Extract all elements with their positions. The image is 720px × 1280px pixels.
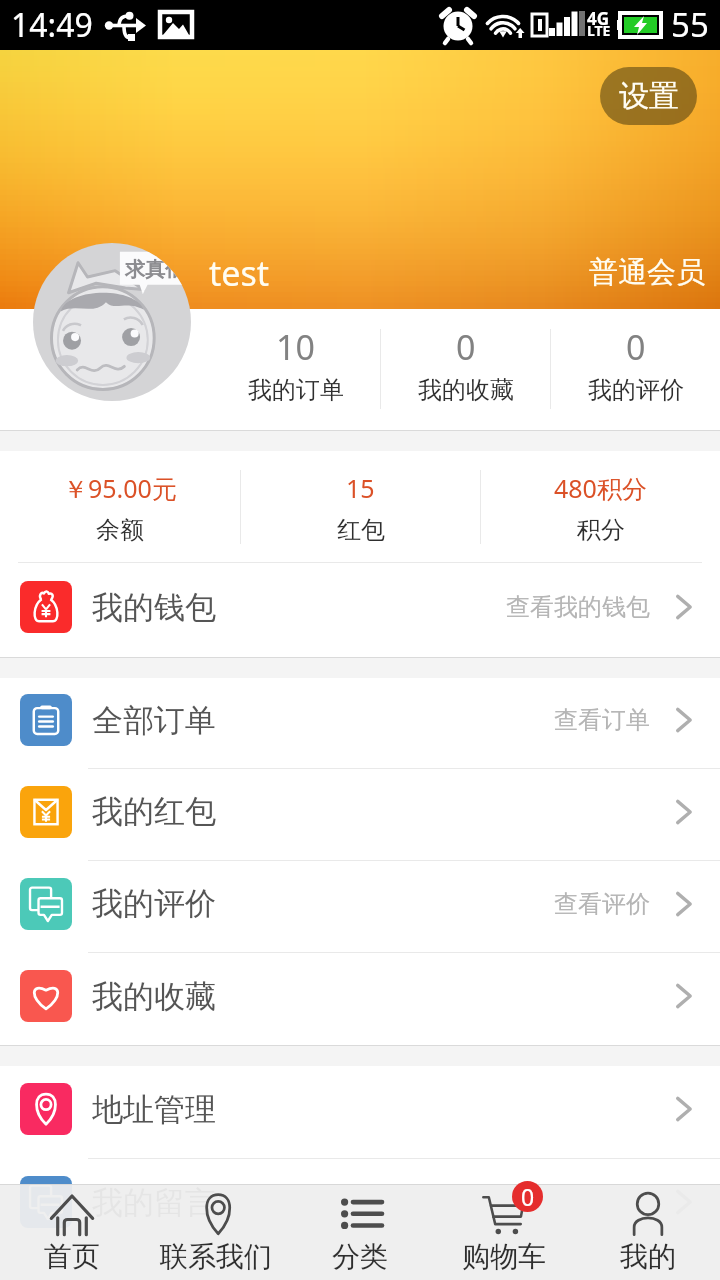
staticText: 查看评价: [554, 889, 650, 919]
button[interactable]: 我的留言: [0, 1159, 720, 1251]
button[interactable]: 0: [551, 308, 720, 430]
staticText: 我的留言: [92, 1183, 216, 1222]
button[interactable]: 我的钱包: [0, 563, 720, 657]
staticText: 积分: [577, 515, 625, 545]
staticText: 首页: [44, 1239, 100, 1274]
staticText: 我的: [620, 1239, 676, 1274]
staticText: 0: [456, 324, 476, 370]
staticText: 0: [521, 1181, 535, 1212]
staticText: 全部订单: [92, 701, 216, 740]
button[interactable]: 首页: [0, 1185, 144, 1280]
staticText: 我的钱包: [92, 588, 216, 627]
button[interactable]: 分类: [288, 1185, 432, 1280]
staticText: 设置: [619, 77, 679, 115]
button[interactable]: 地址管理: [0, 1066, 720, 1158]
button[interactable]: Avatar: [33, 243, 191, 401]
button[interactable]: 0: [381, 308, 550, 430]
staticText: 10: [276, 324, 315, 370]
staticText: 地址管理: [92, 1090, 216, 1129]
staticText: 4G: [587, 7, 610, 30]
button[interactable]: 我的评价: [0, 861, 720, 952]
staticText: 购物车: [462, 1239, 546, 1274]
staticText: 查看订单: [554, 705, 650, 735]
staticText: 15: [346, 471, 375, 505]
staticText: 普通会员: [589, 254, 705, 291]
staticText: 我的评价: [588, 375, 684, 405]
button[interactable]: 10: [211, 308, 380, 430]
staticText: ￥95.00元: [63, 471, 177, 505]
staticText: 55: [671, 2, 709, 47]
button[interactable]: 480积分: [481, 451, 720, 562]
button[interactable]: 15: [241, 451, 480, 562]
button[interactable]: 我的红包: [0, 769, 720, 860]
staticText: 余额: [96, 515, 144, 545]
staticText: 14:49: [11, 3, 93, 47]
staticText: 我的收藏: [92, 977, 216, 1016]
staticText: 我的红包: [92, 792, 216, 831]
button[interactable]: 我的: [576, 1185, 720, 1280]
button[interactable]: ￥95.00元: [0, 451, 240, 562]
button[interactable]: 联系我们: [144, 1185, 288, 1280]
button[interactable]: 设置: [600, 67, 697, 125]
staticText: 我的订单: [248, 375, 344, 405]
button[interactable]: 全部订单: [0, 678, 720, 768]
staticText: 查看我的钱包: [506, 592, 650, 622]
staticText: 480积分: [554, 471, 647, 505]
staticText: test: [209, 250, 270, 296]
staticText: 分类: [332, 1239, 388, 1274]
staticText: 求真信: [125, 257, 185, 282]
button[interactable]: 我的收藏: [0, 953, 720, 1045]
staticText: 0: [626, 324, 646, 370]
staticText: LTE: [587, 21, 611, 40]
staticText: 我的收藏: [418, 375, 514, 405]
staticText: 联系我们: [160, 1239, 272, 1274]
staticText: 我的评价: [92, 884, 216, 923]
button[interactable]: 0: [432, 1185, 576, 1280]
staticText: 红包: [337, 515, 385, 545]
